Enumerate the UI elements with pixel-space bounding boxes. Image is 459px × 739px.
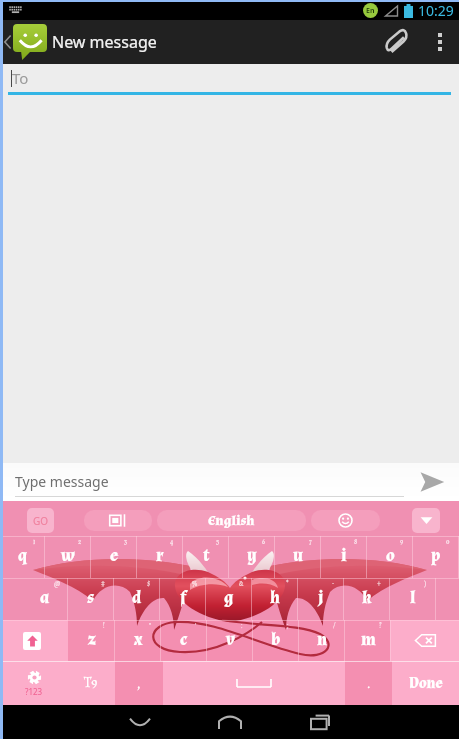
staticText: 3 bbox=[124, 537, 128, 546]
button[interactable]: o bbox=[367, 536, 413, 578]
staticText: o bbox=[386, 545, 395, 567]
button[interactable]: d bbox=[114, 578, 160, 620]
staticText: To bbox=[12, 68, 29, 88]
staticText: m bbox=[361, 629, 376, 651]
staticText: + bbox=[377, 579, 381, 588]
staticText: Done bbox=[409, 674, 443, 693]
button[interactable]: y bbox=[229, 536, 275, 578]
button[interactable]: GO bbox=[27, 508, 54, 533]
staticText: h bbox=[270, 587, 280, 609]
button[interactable]: Navigate up bbox=[0, 20, 47, 64]
staticText: ) bbox=[424, 579, 427, 588]
button[interactable]: Hide keyboard bbox=[412, 508, 440, 533]
button[interactable]: Home bbox=[185, 705, 275, 739]
staticText: k bbox=[362, 587, 372, 609]
staticText: New message bbox=[52, 31, 157, 53]
staticText: z bbox=[88, 629, 96, 651]
staticText: 0 bbox=[446, 537, 450, 546]
button[interactable]: Attach bbox=[371, 20, 421, 64]
staticText: English bbox=[208, 512, 255, 530]
button[interactable]: p bbox=[413, 536, 459, 578]
staticText: y bbox=[247, 545, 257, 567]
button[interactable]: Recent apps bbox=[275, 705, 365, 739]
staticText: - bbox=[332, 579, 335, 588]
staticText: l bbox=[410, 587, 416, 609]
staticText: u bbox=[293, 545, 304, 567]
staticText: # bbox=[101, 579, 105, 588]
button[interactable]: l bbox=[390, 578, 436, 620]
button[interactable]: x bbox=[115, 620, 161, 661]
staticText: t bbox=[203, 545, 210, 567]
button[interactable]: v bbox=[207, 620, 253, 661]
staticText: r bbox=[156, 545, 164, 567]
staticText: T9 bbox=[84, 674, 98, 692]
button[interactable]: z bbox=[68, 620, 115, 661]
staticText: i bbox=[341, 545, 347, 567]
button[interactable]: Shift bbox=[0, 620, 68, 661]
button[interactable]: b bbox=[253, 620, 299, 661]
staticText: c bbox=[180, 629, 188, 651]
staticText: ! bbox=[103, 621, 105, 630]
button[interactable]: . bbox=[345, 661, 392, 705]
staticText: s bbox=[87, 587, 95, 609]
staticText: En bbox=[366, 6, 375, 16]
button[interactable]: T9 bbox=[67, 661, 115, 705]
button[interactable]: Clipboard bbox=[84, 510, 152, 531]
staticText: d bbox=[132, 587, 142, 609]
button[interactable]: e bbox=[91, 536, 137, 578]
button[interactable]: q bbox=[0, 536, 45, 578]
button[interactable]: m bbox=[345, 620, 391, 661]
staticText: 9 bbox=[400, 537, 404, 546]
staticText: p bbox=[431, 545, 441, 567]
staticText: w bbox=[61, 545, 75, 567]
staticText: j bbox=[318, 587, 324, 609]
button[interactable]: Back bbox=[95, 705, 185, 739]
button[interactable]: Delete bbox=[391, 620, 459, 661]
staticText: q bbox=[18, 545, 28, 567]
button[interactable]: k bbox=[344, 578, 390, 620]
staticText: GO bbox=[33, 514, 49, 528]
button[interactable]: a bbox=[22, 578, 68, 620]
staticText: : bbox=[241, 621, 243, 630]
button[interactable]: i bbox=[321, 536, 367, 578]
staticText: ; bbox=[287, 621, 289, 630]
button[interactable]: Symbols bbox=[0, 661, 67, 705]
staticText: 4 bbox=[170, 537, 174, 546]
staticText: * bbox=[286, 579, 289, 588]
button[interactable]: n bbox=[299, 620, 345, 661]
button[interactable]: More options bbox=[421, 20, 459, 64]
staticText: % bbox=[192, 579, 198, 588]
staticText: 5 bbox=[216, 537, 220, 546]
staticText: @ bbox=[54, 579, 61, 588]
staticText: , bbox=[137, 673, 141, 694]
staticText: ?123 bbox=[25, 686, 43, 697]
staticText: 6 bbox=[262, 537, 266, 546]
button[interactable]: Emoji bbox=[311, 510, 380, 531]
staticText: ' bbox=[195, 621, 197, 630]
staticText: n bbox=[317, 629, 328, 651]
button[interactable]: u bbox=[275, 536, 321, 578]
staticText: & bbox=[239, 579, 244, 588]
button[interactable]: c bbox=[161, 620, 207, 661]
staticText: " bbox=[149, 621, 152, 630]
staticText: v bbox=[226, 629, 235, 651]
button[interactable]: h bbox=[252, 578, 298, 620]
button[interactable]: w bbox=[45, 536, 91, 578]
button[interactable]: g bbox=[206, 578, 252, 620]
staticText: 10:29 bbox=[418, 1, 454, 20]
button[interactable]: r bbox=[137, 536, 183, 578]
staticText: Type message bbox=[15, 472, 109, 491]
button[interactable]: t bbox=[183, 536, 229, 578]
button[interactable]: Space bbox=[163, 661, 345, 705]
staticText: a bbox=[40, 587, 50, 609]
button[interactable]: f bbox=[160, 578, 206, 620]
button[interactable]: s bbox=[68, 578, 114, 620]
button[interactable]: j bbox=[298, 578, 344, 620]
button[interactable]: , bbox=[115, 661, 163, 705]
button[interactable]: English bbox=[157, 510, 306, 531]
staticText: g bbox=[224, 587, 234, 609]
staticText: f bbox=[180, 587, 187, 609]
button[interactable]: Done bbox=[392, 661, 459, 705]
button[interactable]: Send bbox=[404, 463, 459, 501]
staticText: / bbox=[333, 621, 336, 630]
